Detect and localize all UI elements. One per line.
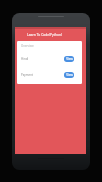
button[interactable]: Hindi (17, 50, 82, 67)
staticText: View (66, 57, 73, 61)
staticText: View (66, 73, 73, 77)
staticText: Payment (21, 73, 64, 77)
button[interactable]: View (64, 72, 74, 78)
staticText: Overview (21, 44, 34, 48)
staticText: Hindi (21, 57, 64, 61)
staticText: Learn To Code(Python) (27, 32, 63, 36)
button[interactable]: Payment (17, 67, 82, 83)
button[interactable]: View (64, 56, 74, 62)
